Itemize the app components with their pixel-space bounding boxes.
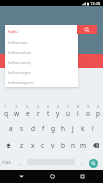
button[interactable]: , [13, 154, 26, 171]
button[interactable]: l [88, 120, 98, 137]
button[interactable]: hallucinogenic [5, 76, 78, 86]
staticText: x [31, 141, 35, 150]
button[interactable]: 7 [63, 103, 73, 120]
staticText: ?123 [2, 160, 11, 165]
staticText: 5 [47, 104, 50, 109]
staticText: hallucination [8, 50, 32, 55]
staticText: hallu [8, 28, 18, 34]
button[interactable]: n [68, 137, 78, 154]
staticText: d [31, 124, 35, 133]
staticText: 9 [87, 104, 90, 109]
button[interactable]: 2 [11, 103, 22, 120]
staticText: g [51, 124, 55, 133]
button[interactable]: a [5, 120, 16, 137]
staticText: 3 [26, 104, 29, 109]
button[interactable]: 1 [0, 103, 11, 120]
staticText: hallucinogenic [8, 80, 34, 85]
staticText: c [41, 141, 45, 150]
staticText: q [4, 109, 8, 118]
staticText: s [20, 124, 24, 133]
staticText: j [72, 124, 74, 133]
staticText: m [80, 141, 87, 150]
staticText: 1 [4, 104, 7, 109]
staticText: , [19, 159, 21, 167]
staticText: i [77, 109, 79, 118]
button[interactable]: hallu [5, 25, 78, 36]
staticText: h [61, 124, 66, 133]
button[interactable]: b [58, 137, 68, 154]
staticText: r [37, 109, 40, 118]
button[interactable]: hallucination [5, 46, 78, 56]
staticText: b [61, 141, 65, 150]
button[interactable]: hallucinatory [5, 56, 78, 66]
staticText: 6 [57, 104, 60, 109]
staticText: 2 [15, 104, 18, 109]
button[interactable]: . [76, 154, 88, 171]
button[interactable]: Recents [72, 170, 92, 183]
button[interactable]: s [16, 120, 27, 137]
button[interactable]: Shift [0, 137, 16, 154]
button[interactable]: Back [11, 170, 31, 183]
button[interactable]: 9 [83, 103, 93, 120]
staticText: z [20, 141, 24, 150]
button[interactable]: 4 [33, 103, 43, 120]
button[interactable]: Backspace [88, 137, 103, 154]
staticText: 0 [97, 104, 100, 109]
staticText: v [51, 141, 55, 150]
staticText: k [81, 124, 85, 133]
button[interactable]: hallucinate [5, 36, 78, 46]
button[interactable]: j [68, 120, 78, 137]
staticText: . [81, 159, 83, 167]
button[interactable]: 5 [43, 103, 53, 120]
staticText: f [42, 124, 45, 133]
button[interactable]: m [78, 137, 88, 154]
button[interactable]: f [38, 120, 48, 137]
button[interactable]: h [58, 120, 68, 137]
button[interactable]: ?123 [0, 154, 13, 171]
button[interactable]: z [16, 137, 27, 154]
staticText: y [56, 109, 60, 118]
button[interactable]: g [48, 120, 58, 137]
button[interactable]: x [27, 137, 38, 154]
staticText: l [92, 124, 94, 133]
staticText: p [96, 109, 100, 118]
button[interactable]: Search [89, 159, 98, 168]
staticText: t [47, 109, 50, 118]
button[interactable]: hallucinogen [5, 66, 78, 76]
staticText: a [9, 124, 13, 133]
staticText: o [86, 109, 90, 118]
button[interactable]: c [38, 137, 48, 154]
button[interactable]: 8 [73, 103, 83, 120]
staticText: 8 [77, 104, 80, 109]
staticText: 12:28 [90, 1, 101, 6]
staticText: e [26, 109, 30, 118]
staticText: n [71, 141, 76, 150]
staticText: hallucinate [8, 40, 28, 45]
staticText: w [14, 109, 20, 118]
button[interactable]: Search [77, 25, 97, 34]
button[interactable]: k [78, 120, 88, 137]
button[interactable]: 0 [93, 103, 103, 120]
button[interactable]: 3 [22, 103, 33, 120]
staticText: u [66, 109, 71, 118]
staticText: 4 [37, 104, 40, 109]
staticText: hallucinatory [8, 60, 32, 65]
staticText: hallucinogen [8, 70, 32, 75]
button[interactable]: Home [42, 170, 62, 183]
button[interactable]: v [48, 137, 58, 154]
staticText: 7 [67, 104, 70, 109]
button[interactable]: d [27, 120, 38, 137]
button[interactable]: 6 [53, 103, 63, 120]
